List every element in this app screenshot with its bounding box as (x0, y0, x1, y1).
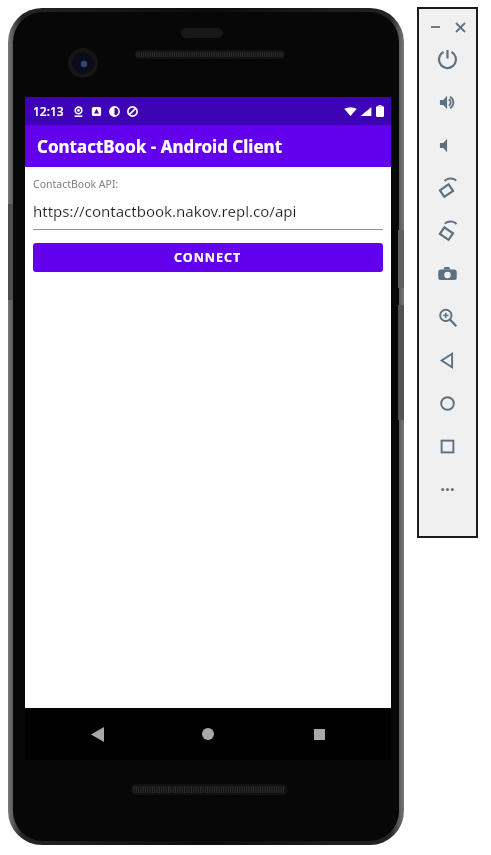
button[interactable]: Home (418, 382, 477, 425)
button[interactable]: Take screenshot (418, 253, 477, 296)
button[interactable]: Volume down (418, 124, 477, 167)
staticText: CONNECT (174, 249, 242, 266)
button[interactable]: Back (418, 339, 477, 382)
button[interactable]: Rotate right (418, 210, 477, 253)
button[interactable]: Zoom (418, 296, 477, 339)
button[interactable]: Power (418, 38, 477, 81)
button[interactable]: Home (186, 712, 230, 756)
staticText: 12:13 (33, 103, 64, 119)
button[interactable]: More (418, 468, 477, 511)
staticText: ContactBook - Android Client (37, 135, 283, 158)
button[interactable]: Volume up (418, 81, 477, 124)
button[interactable]: Minimise (427, 19, 443, 35)
button[interactable]: Close (452, 19, 468, 35)
button[interactable]: Back (75, 712, 119, 756)
staticText: ContactBook API: (33, 177, 119, 191)
button[interactable]: CONNECT (33, 243, 383, 272)
button[interactable]: Overview (418, 425, 477, 468)
button[interactable]: Recent apps (297, 712, 341, 756)
staticText: https://contactbook.nakov.repl.co/api (33, 201, 297, 221)
button[interactable]: Rotate left (418, 167, 477, 210)
